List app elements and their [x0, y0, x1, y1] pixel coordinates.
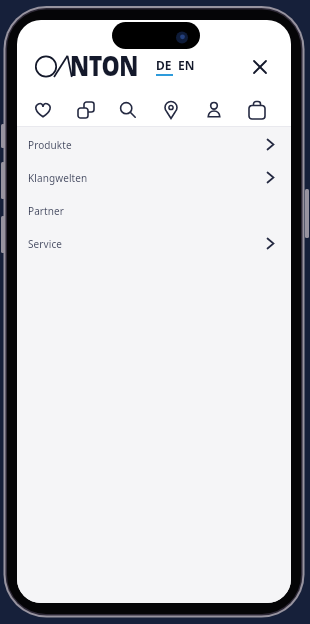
button[interactable] [112, 94, 144, 126]
button[interactable] [155, 94, 187, 126]
button[interactable] [198, 94, 230, 126]
staticText: Partner [28, 204, 65, 218]
button[interactable]: Produkte [17, 128, 291, 161]
button[interactable]: Klangwelten [17, 161, 291, 194]
staticText: DE [156, 57, 172, 73]
button[interactable] [247, 54, 272, 79]
button[interactable] [35, 55, 136, 78]
staticText: NTON [70, 46, 139, 84]
staticText: Service [28, 237, 63, 251]
staticText: Produkte [28, 138, 72, 152]
button[interactable]: Partner [17, 194, 291, 227]
button[interactable]: Service [17, 227, 291, 260]
button[interactable] [27, 94, 59, 126]
staticText: Klangwelten [28, 171, 88, 185]
staticText: EN [178, 57, 195, 73]
button[interactable] [70, 94, 102, 126]
button[interactable] [241, 94, 273, 126]
button[interactable]: DE [156, 57, 195, 73]
